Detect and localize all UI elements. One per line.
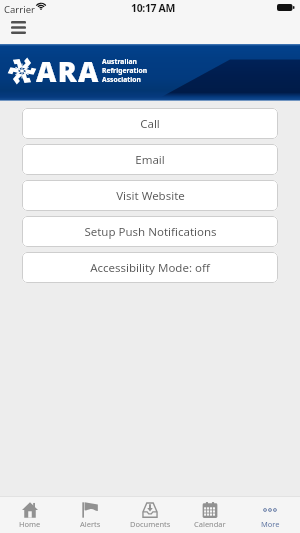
staticText: Email [135, 152, 165, 168]
button[interactable]: Calendar [180, 497, 240, 533]
staticText: Visit Website [116, 188, 185, 204]
button[interactable]: Call [22, 108, 278, 139]
staticText: Home [19, 519, 41, 529]
staticText: Call [140, 116, 160, 132]
staticText: Australian [102, 57, 137, 66]
button[interactable]: Alerts [60, 497, 120, 533]
staticText: Accessibility Mode: off [90, 260, 210, 276]
button[interactable]: Setup Push Notifications [22, 216, 278, 247]
button[interactable]: Visit Website [22, 180, 278, 211]
staticText: Refrigeration [102, 66, 148, 75]
button[interactable]: Documents [120, 497, 180, 533]
staticText: Documents [130, 519, 171, 529]
staticText: 10:17 AM [131, 1, 176, 15]
button[interactable]: Home [0, 497, 60, 533]
button[interactable]: Menu [4, 15, 32, 39]
staticText: ARA [36, 52, 100, 90]
staticText: Carrier [4, 3, 35, 16]
button[interactable]: More [240, 497, 300, 533]
staticText: Alerts [80, 519, 101, 529]
staticText: Association [102, 75, 141, 84]
staticText: Setup Push Notifications [84, 224, 217, 240]
staticText: More [261, 519, 280, 529]
staticText: Calendar [194, 519, 226, 529]
button[interactable]: Email [22, 144, 278, 175]
button[interactable]: Accessibility Mode: off [22, 252, 278, 283]
